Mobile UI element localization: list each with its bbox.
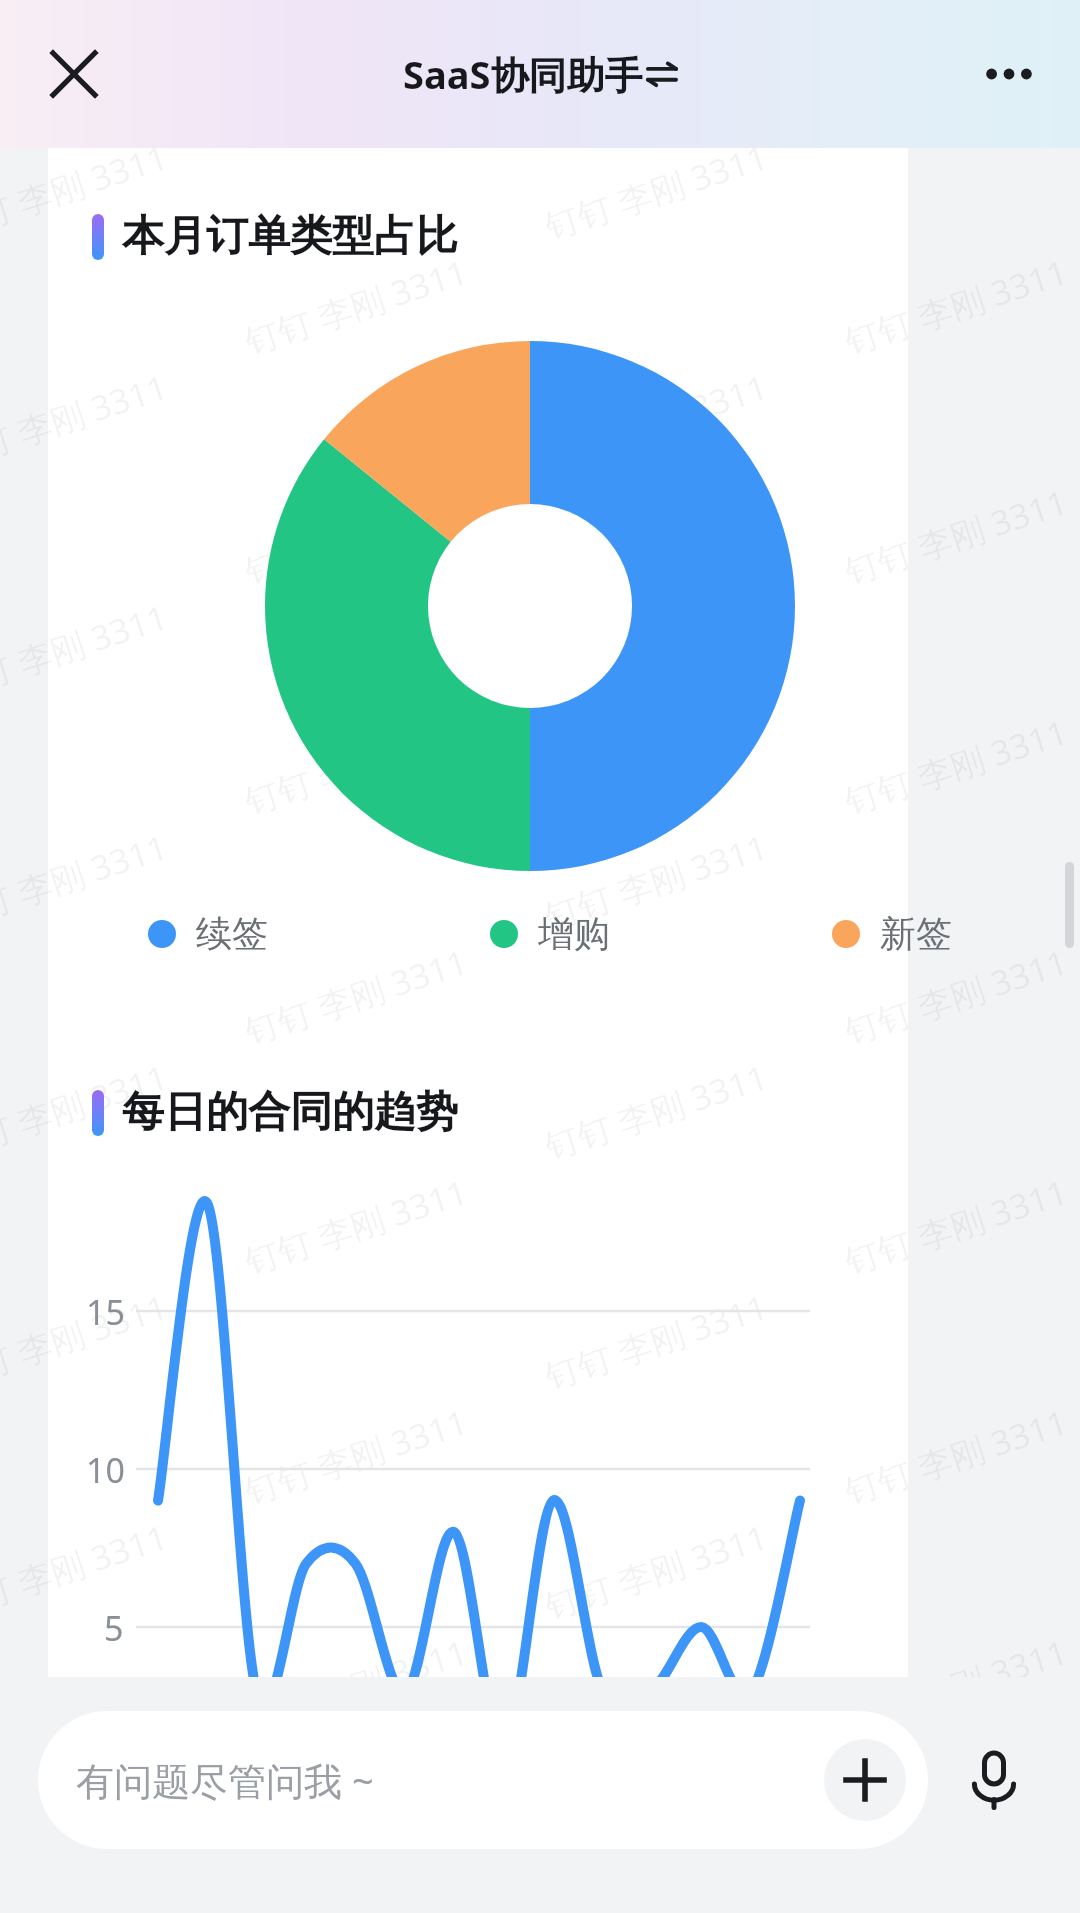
button[interactable]: 新签: [832, 911, 952, 956]
staticText: 钉钉 李刚 3311: [0, 1513, 173, 1629]
button[interactable]: 增购: [490, 911, 610, 956]
button[interactable]: More options: [966, 31, 1052, 117]
staticText: 新签: [880, 911, 952, 956]
staticText: 15: [86, 1289, 125, 1335]
staticText: 有问题尽管问我 ~: [76, 1754, 824, 1806]
staticText: 钉钉 李刚 3311: [839, 1168, 1073, 1284]
staticText: 钉钉 李刚 3311: [239, 938, 473, 1054]
staticText: 钉钉 李刚 3311: [239, 708, 473, 824]
staticText: 钉钉 李刚 3311: [839, 1628, 1073, 1744]
staticText: 钉钉 李刚 3311: [539, 593, 773, 709]
staticText: 钉钉 李刚 3311: [539, 1513, 773, 1629]
staticText: 钉钉 李刚 3311: [239, 1398, 473, 1514]
staticText: 5: [104, 1605, 124, 1651]
staticText: 钉钉 李刚 3311: [839, 708, 1073, 824]
staticText: 钉钉 李刚 3311: [0, 593, 173, 709]
staticText: 每日的合同的趋势: [122, 1086, 458, 1139]
staticText: SaaS协同助手: [403, 48, 643, 100]
staticText: 钉钉 李刚 3311: [0, 133, 173, 249]
staticText: 钉钉 李刚 3311: [239, 1628, 473, 1744]
staticText: 钉钉 李刚 3311: [539, 1283, 773, 1399]
staticText: 钉钉 李刚 3311: [239, 478, 473, 594]
staticText: 钉钉 李刚 3311: [839, 478, 1073, 594]
button[interactable]: 续签: [148, 911, 268, 956]
staticText: 本月订单类型占比: [122, 210, 458, 263]
staticText: 钉钉 李刚 3311: [539, 363, 773, 479]
staticText: 10: [86, 1447, 125, 1493]
staticText: 钉钉 李刚 3311: [539, 1743, 773, 1859]
staticText: 钉钉 李刚 3311: [839, 938, 1073, 1054]
staticText: 钉钉 李刚 3311: [539, 133, 773, 249]
staticText: 钉钉 李刚 3311: [0, 1743, 173, 1859]
button[interactable]: 有问题尽管问我 ~: [38, 1711, 928, 1849]
staticText: 钉钉 李刚 3311: [0, 823, 173, 939]
staticText: 钉钉 李刚 3311: [0, 363, 173, 479]
staticText: 钉钉 李刚 3311: [0, 1283, 173, 1399]
staticText: 钉钉 李刚 3311: [239, 248, 473, 364]
staticText: 钉钉 李刚 3311: [0, 1053, 173, 1169]
staticText: 钉钉 李刚 3311: [839, 248, 1073, 364]
button[interactable]: Add: [824, 1739, 906, 1821]
staticText: 钉钉 李刚 3311: [839, 1398, 1073, 1514]
staticText: 续签: [196, 911, 268, 956]
staticText: 钉钉 李刚 3311: [539, 823, 773, 939]
button[interactable]: Close: [34, 34, 114, 114]
button[interactable]: Voice input: [934, 1720, 1054, 1840]
staticText: 增购: [538, 911, 610, 956]
